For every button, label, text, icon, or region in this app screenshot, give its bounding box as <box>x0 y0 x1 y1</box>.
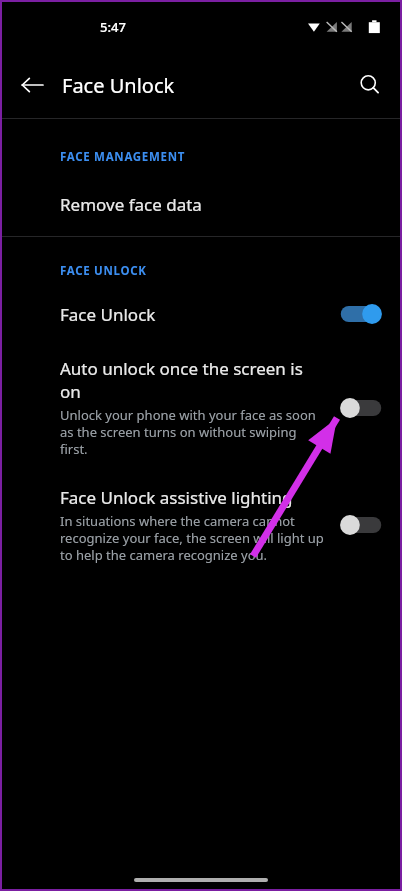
button[interactable]: Auto unlock once the screen is on <box>0 343 402 472</box>
staticText: Face Unlock <box>62 72 175 99</box>
staticText: 5:47 <box>100 18 126 36</box>
staticText: Remove face data <box>60 193 202 216</box>
staticText: Unlock your phone with your face as soon… <box>60 406 324 458</box>
staticText: Face Unlock assistive lighting <box>60 486 293 509</box>
staticText: FACE UNLOCK <box>60 263 147 279</box>
button[interactable]: Remove face data <box>0 193 402 236</box>
staticText: FACE MANAGEMENT <box>60 149 186 165</box>
staticText: Auto unlock once the screen is on <box>60 357 324 403</box>
button[interactable]: Search <box>348 63 392 107</box>
staticText: Face Unlock <box>60 303 156 326</box>
button[interactable]: Face Unlock <box>0 301 402 343</box>
button[interactable]: Face Unlock assistive lighting <box>0 472 402 578</box>
staticText: In situations where the camera cannot re… <box>60 512 324 564</box>
button[interactable]: Back <box>10 63 54 107</box>
